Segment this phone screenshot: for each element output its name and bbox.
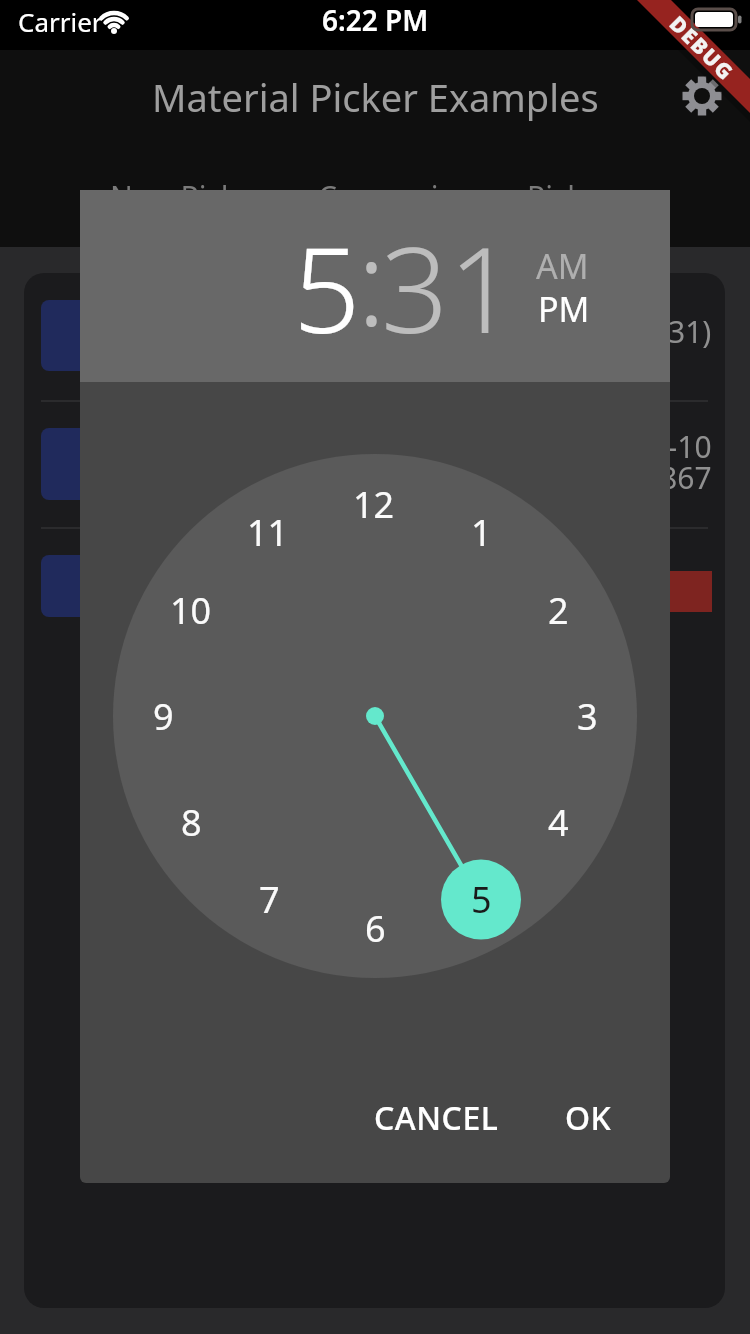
- button[interactable]: CANCEL: [186, 1086, 686, 1150]
- staticText: :: [357, 200, 386, 361]
- button[interactable]: 1: [231, 496, 731, 568]
- staticText: OK: [565, 1096, 612, 1140]
- button[interactable]: 3: [337, 680, 750, 752]
- staticText: Carrier: [18, 4, 103, 38]
- button[interactable]: 12: [124, 468, 624, 540]
- button[interactable]: 31: [198, 169, 698, 405]
- button[interactable]: 6: [125, 892, 625, 964]
- staticText: 11: [247, 508, 289, 557]
- button[interactable]: [41, 555, 561, 617]
- staticText: 5: [471, 875, 492, 924]
- button[interactable]: 7: [19, 863, 519, 935]
- staticText: 31: [381, 207, 516, 368]
- staticText: 1969-12-10: [555, 426, 712, 467]
- button[interactable]: [41, 428, 561, 500]
- staticText: DEBUG: [663, 10, 741, 88]
- button[interactable]: New Pickers: [0, 166, 445, 226]
- button[interactable]: 11: [18, 496, 518, 568]
- staticText: 8: [181, 798, 202, 847]
- staticText: PM: [538, 286, 590, 332]
- staticText: Material Picker Examples: [152, 71, 599, 123]
- staticText: 6: [365, 904, 386, 953]
- staticText: 5: [293, 207, 361, 368]
- staticText: AM: [536, 243, 589, 289]
- button[interactable]: 4: [308, 786, 750, 858]
- staticText: 9: [153, 692, 174, 741]
- staticText: (31): [659, 311, 712, 352]
- button[interactable]: AM: [312, 232, 750, 300]
- staticText: 6:22 PM: [322, 1, 429, 39]
- button[interactable]: OK: [338, 1086, 750, 1150]
- button[interactable]: Pickers: [327, 166, 750, 226]
- staticText: 4: [548, 798, 569, 847]
- staticText: New Pickers: [110, 176, 281, 217]
- staticText: Pickers: [527, 176, 627, 217]
- button[interactable]: Comparison: [154, 166, 654, 226]
- button[interactable]: [41, 300, 561, 371]
- button[interactable]: PM: [314, 275, 750, 343]
- staticText: 12: [353, 480, 395, 529]
- staticText: Comparison: [318, 176, 490, 217]
- button[interactable]: 5: [77, 169, 577, 405]
- staticText: 23:57:58.867: [533, 457, 712, 498]
- staticText: 2: [548, 586, 569, 635]
- button[interactable]: 5: [231, 863, 731, 935]
- staticText: 10: [170, 586, 212, 635]
- button[interactable]: 8: [0, 786, 441, 858]
- staticText: CANCEL: [374, 1096, 499, 1140]
- button[interactable]: 10: [0, 574, 441, 646]
- staticText: 3: [577, 692, 598, 741]
- button[interactable]: 9: [0, 680, 413, 752]
- button[interactable]: [680, 74, 724, 118]
- staticText: 7: [259, 875, 280, 924]
- staticText: 1: [471, 508, 492, 557]
- button[interactable]: 2: [308, 574, 750, 646]
